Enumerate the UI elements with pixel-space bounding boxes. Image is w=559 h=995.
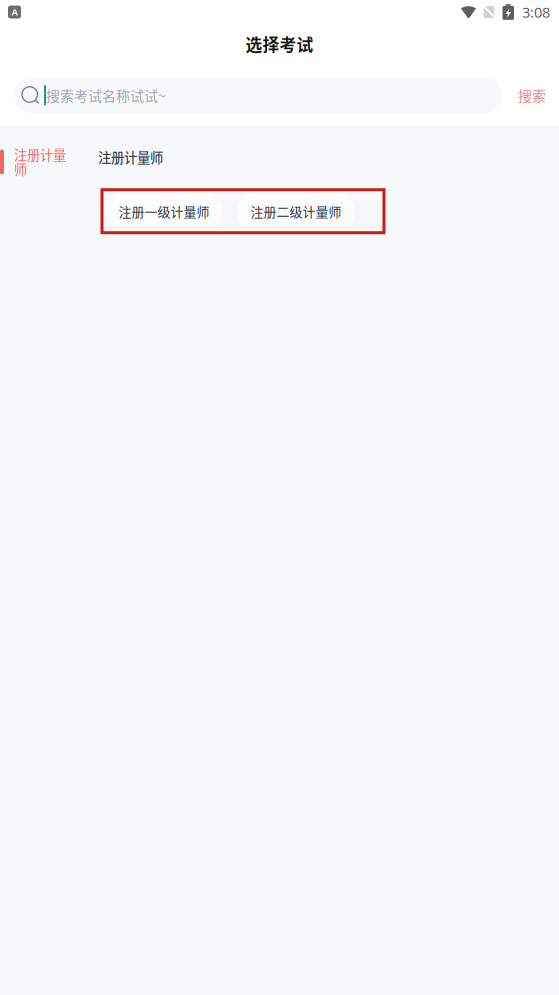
button[interactable]: 注册计量 — [0, 128, 90, 178]
button[interactable]: 注册二级计量师 — [237, 193, 355, 230]
staticText: A — [11, 6, 17, 18]
staticText: 师 — [14, 160, 27, 178]
staticText: 搜索考试名称试试~ — [46, 85, 166, 105]
staticText: 3:08 — [522, 2, 550, 22]
button[interactable]: 搜索 — [518, 76, 546, 114]
staticText: 选择考试 — [245, 32, 313, 56]
staticText: 注册二级计量师 — [250, 202, 341, 220]
button[interactable]: 注册一级计量师 — [105, 193, 223, 230]
button[interactable]: 搜索考试名称试试~ — [14, 77, 502, 114]
staticText: 搜索 — [518, 85, 546, 105]
staticText: 注册计量师 — [98, 147, 163, 167]
staticText: 注册一级计量师 — [118, 202, 209, 220]
staticText: 注册计量 — [14, 145, 66, 164]
